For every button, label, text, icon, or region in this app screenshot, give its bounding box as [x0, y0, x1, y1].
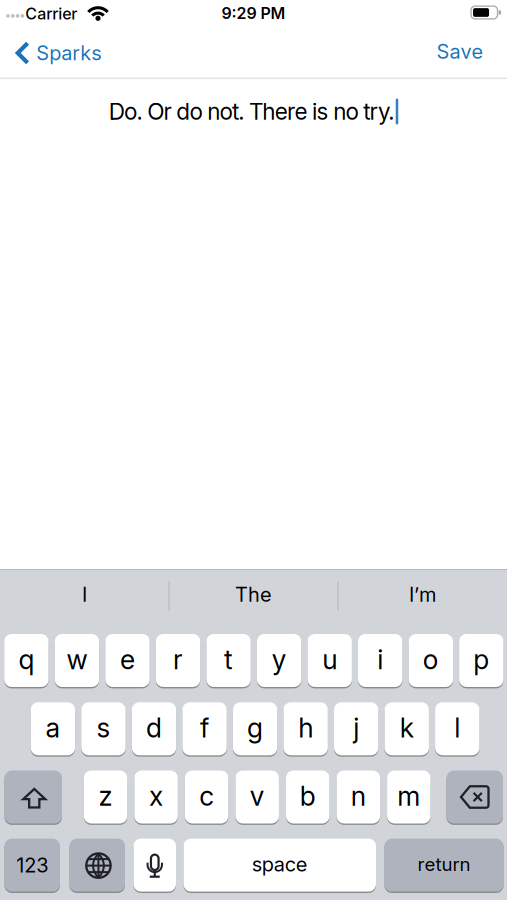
button[interactable]: i [358, 633, 402, 688]
staticText: t [224, 644, 233, 675]
button[interactable]: Dictate [133, 838, 176, 893]
button[interactable]: return [384, 838, 503, 893]
staticText: I’m [409, 583, 436, 606]
staticText: u [322, 644, 337, 675]
staticText: i [377, 644, 383, 675]
button[interactable]: s [81, 701, 126, 756]
button[interactable]: q [4, 633, 49, 688]
button[interactable]: p [459, 633, 503, 688]
button[interactable]: u [307, 633, 352, 688]
staticText: 123 [16, 853, 48, 877]
button[interactable]: m [387, 769, 431, 824]
button[interactable]: r [156, 633, 200, 688]
staticText: v [250, 780, 265, 812]
button[interactable]: o [409, 633, 453, 688]
staticText: j [353, 712, 359, 744]
staticText: a [45, 712, 60, 744]
staticText: w [66, 644, 87, 675]
button[interactable]: Delete [446, 769, 503, 824]
button[interactable]: e [105, 633, 150, 688]
staticText: f [200, 712, 209, 744]
staticText: space [252, 852, 308, 876]
button[interactable]: z [84, 769, 127, 824]
staticText: o [423, 644, 439, 675]
staticText: k [400, 712, 414, 744]
button[interactable]: h [283, 701, 328, 756]
staticText: d [146, 712, 162, 744]
staticText: b [300, 780, 316, 812]
button[interactable]: l [435, 701, 479, 756]
staticText: 9:29 PM [221, 4, 285, 23]
button[interactable]: f [182, 701, 227, 756]
button[interactable]: b [286, 769, 329, 824]
button[interactable]: t [206, 633, 251, 688]
staticText: q [18, 644, 34, 675]
button[interactable]: The [235, 583, 272, 606]
button[interactable]: Save [436, 40, 483, 63]
button[interactable]: Shift [4, 769, 62, 824]
staticText: s [96, 712, 110, 744]
staticText: x [149, 780, 163, 812]
button[interactable]: I [82, 583, 87, 606]
staticText: I [82, 583, 87, 606]
button[interactable]: w [55, 633, 99, 688]
staticText: The [235, 583, 272, 606]
staticText: z [98, 780, 112, 812]
button[interactable]: j [334, 701, 378, 756]
button[interactable]: I’m [409, 583, 436, 606]
button[interactable]: n [337, 769, 380, 824]
staticText: n [351, 780, 366, 812]
staticText: r [173, 644, 183, 675]
button[interactable]: c [185, 769, 228, 824]
staticText: m [397, 780, 420, 812]
button[interactable]: k [384, 701, 429, 756]
button[interactable]: v [235, 769, 279, 824]
staticText: c [199, 780, 214, 812]
button[interactable]: space [183, 838, 376, 893]
button[interactable]: y [257, 633, 301, 688]
staticText: y [272, 644, 287, 675]
button[interactable]: Next keyboard [69, 838, 125, 893]
staticText: g [247, 712, 263, 744]
button[interactable]: Sparks [16, 41, 101, 65]
staticText: return [417, 853, 470, 875]
staticText: Save [436, 40, 483, 63]
staticText: Sparks [36, 41, 101, 65]
staticText: l [454, 712, 460, 744]
button[interactable]: d [132, 701, 176, 756]
staticText: e [120, 644, 135, 675]
button[interactable]: g [233, 701, 277, 756]
button[interactable]: x [134, 769, 178, 824]
staticText: p [473, 644, 489, 675]
button[interactable]: Numbers [4, 838, 60, 893]
staticText: Carrier [25, 4, 77, 23]
button[interactable]: a [31, 701, 75, 756]
staticText: Do. Or do not. There is no try. [109, 98, 394, 125]
staticText: h [298, 712, 313, 744]
